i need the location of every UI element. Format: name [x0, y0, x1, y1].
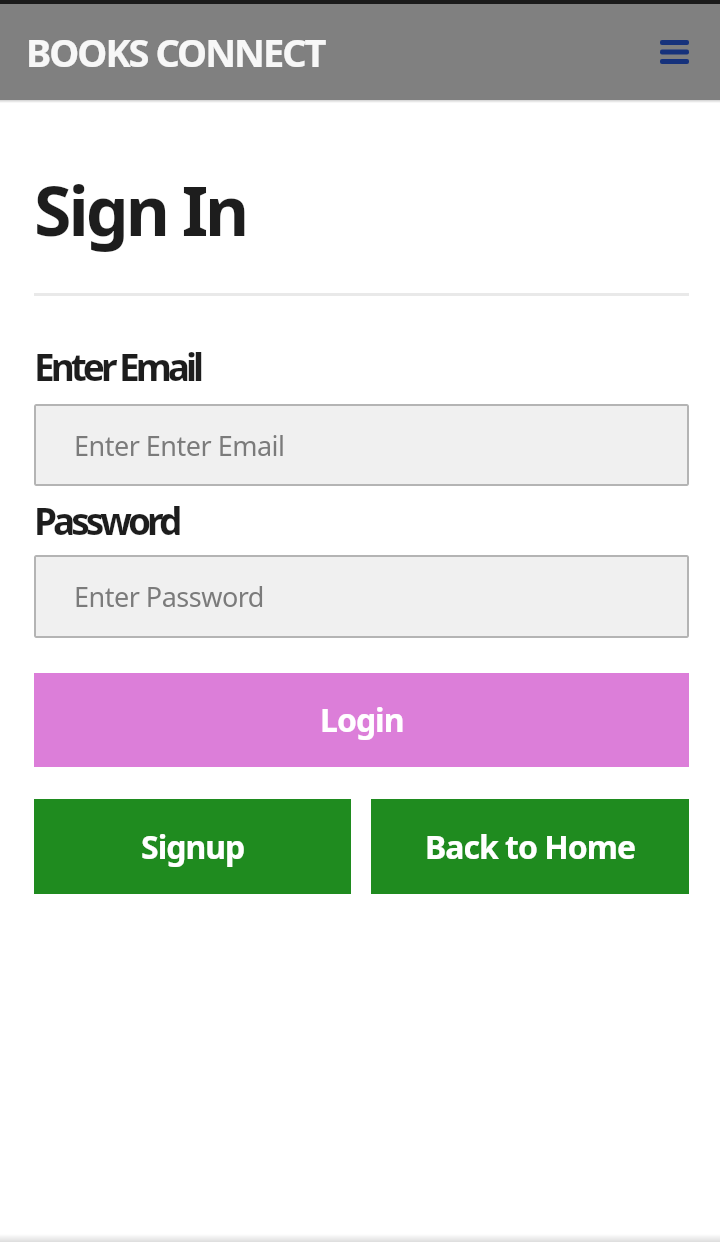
staticText: Login: [320, 698, 404, 742]
staticText: Back to Home: [425, 825, 636, 869]
button[interactable]: Enter Enter Email: [34, 404, 689, 486]
staticText: Enter Password: [74, 578, 264, 615]
button[interactable]: Back to Home: [371, 799, 689, 894]
staticText: Enter Email: [34, 341, 201, 391]
staticText: Password: [34, 495, 179, 545]
staticText: Sign In: [34, 163, 247, 256]
staticText: Enter Enter Email: [74, 427, 285, 464]
button[interactable]: Login: [34, 673, 689, 767]
button[interactable]: [652, 30, 696, 74]
staticText: Signup: [141, 825, 245, 869]
button[interactable]: Signup: [34, 799, 351, 894]
staticText: BOOKS CONNECT: [26, 26, 325, 78]
button[interactable]: Enter Password: [34, 555, 689, 638]
